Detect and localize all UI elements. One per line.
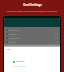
button[interactable] — [4, 32, 60, 36]
button[interactable] — [4, 36, 60, 40]
staticText: No activity yet — [13, 65, 26, 68]
button[interactable]: Start goal — [13, 60, 60, 63]
staticText: Start goal — [16, 60, 25, 63]
staticText: Tune daily targets, reminders and streak… — [6, 10, 58, 13]
staticText: TODAY — [6, 48, 12, 50]
button[interactable] — [4, 40, 60, 44]
button[interactable] — [4, 28, 60, 32]
staticText: Goal Settings — [23, 3, 42, 7]
